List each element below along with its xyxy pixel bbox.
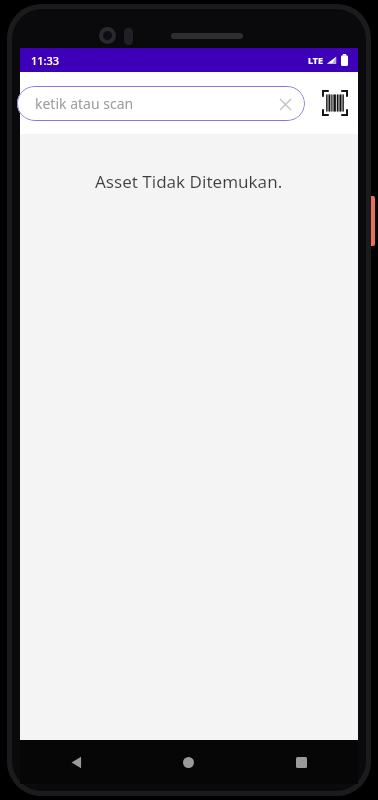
staticText: ketik atau scan xyxy=(35,94,134,113)
button[interactable]: ketik atau scan xyxy=(17,86,305,121)
button[interactable]: Home xyxy=(132,740,245,784)
button[interactable]: Scan barcode xyxy=(316,84,354,122)
button[interactable]: Back xyxy=(20,740,132,784)
button[interactable]: Recent apps xyxy=(245,740,358,784)
staticText: 11:33 xyxy=(31,53,60,68)
button[interactable]: Clear text xyxy=(275,94,295,114)
staticText: LTE xyxy=(308,54,324,66)
staticText: Asset Tidak Ditemukan. xyxy=(95,170,283,193)
